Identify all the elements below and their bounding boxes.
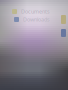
button[interactable]: Downloads (0, 17, 68, 22)
staticText: Documents (21, 8, 50, 15)
button[interactable]: Documents (0, 9, 68, 14)
staticText: Downloads (23, 16, 50, 23)
